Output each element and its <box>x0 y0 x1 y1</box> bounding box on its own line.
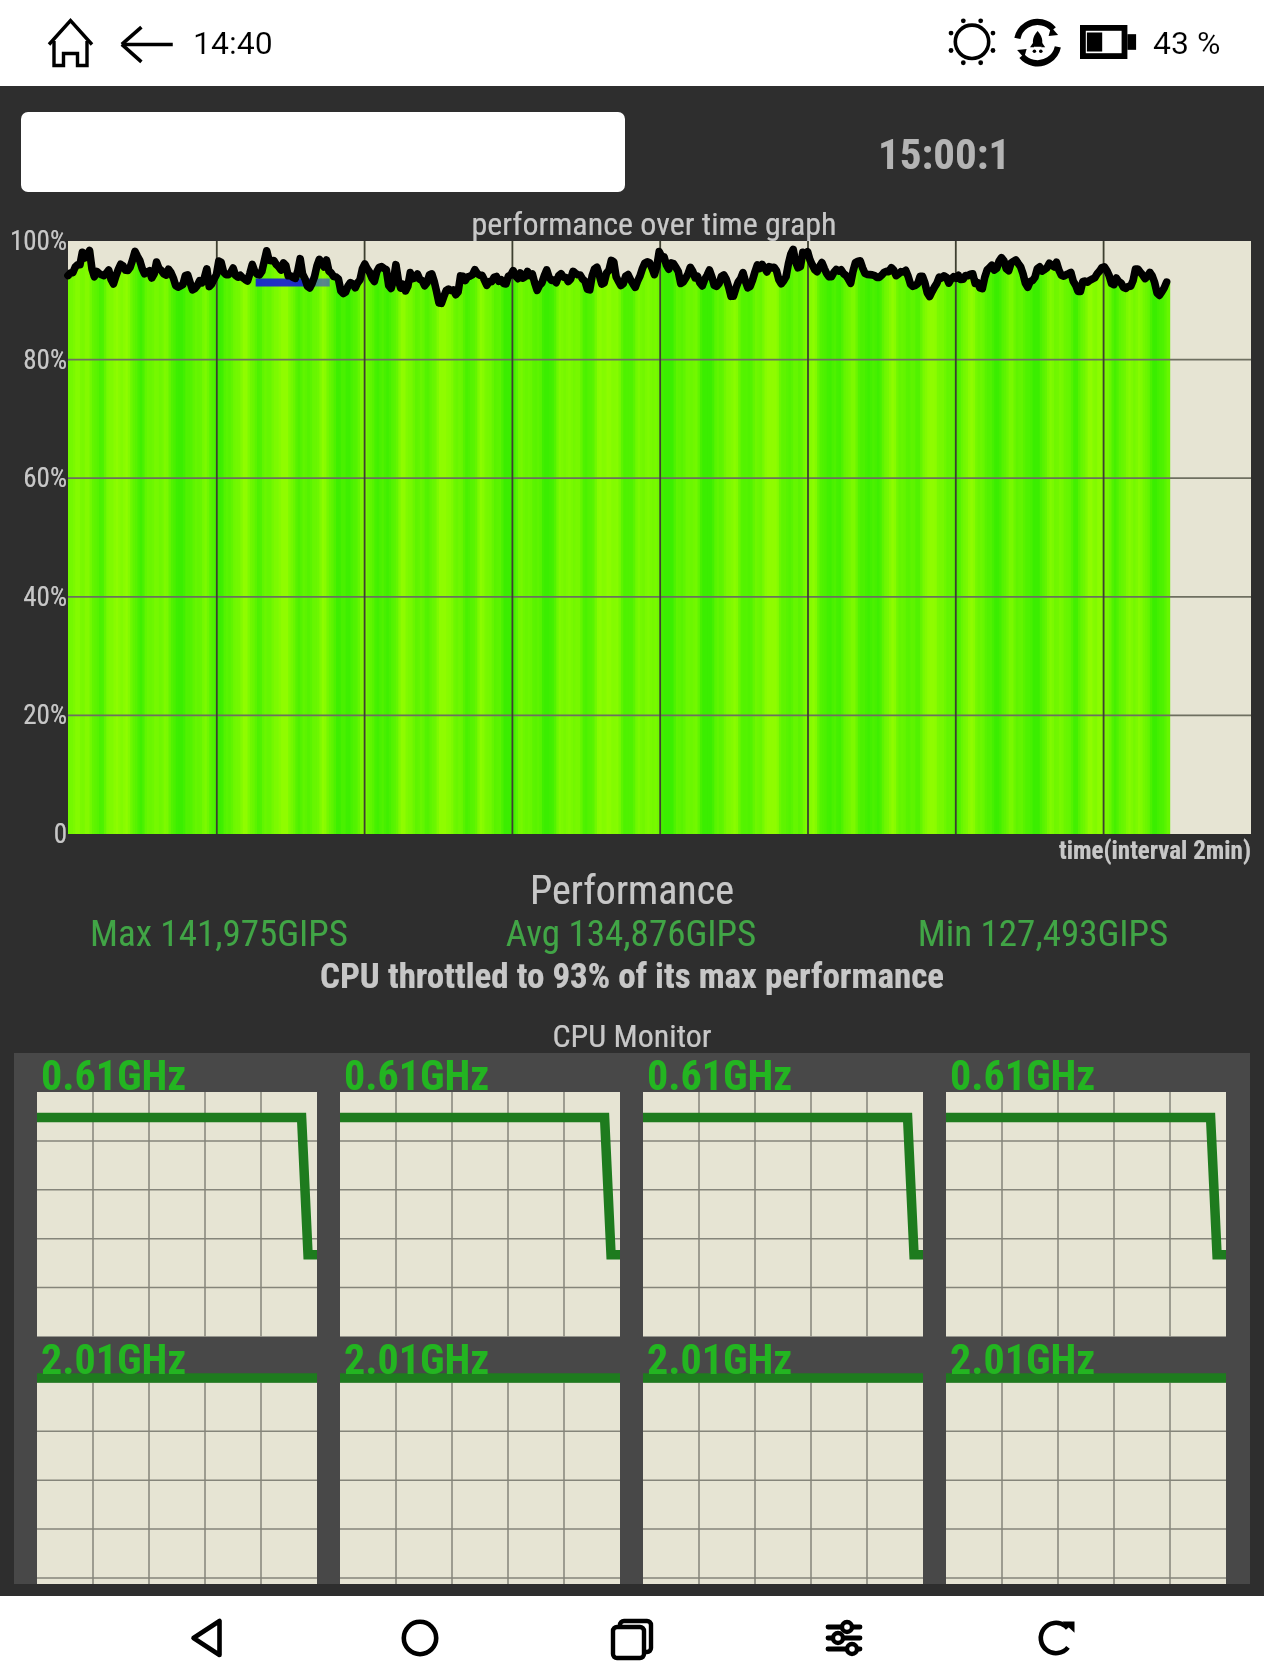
staticText: Min 127,493GIPS <box>837 912 1249 955</box>
staticText: 20% <box>0 699 67 731</box>
button[interactable]: Back <box>102 1596 314 1680</box>
staticText: 0 <box>0 818 67 850</box>
staticText: 2.01GHz <box>647 1335 793 1384</box>
staticText: 0.61GHz <box>41 1053 187 1100</box>
staticText: Avg 134,876GIPS <box>425 912 837 955</box>
staticText: 80% <box>0 344 67 376</box>
staticText: 0.61GHz <box>950 1053 1096 1100</box>
staticText: 100% <box>0 225 67 257</box>
staticText: 2.01GHz <box>950 1335 1096 1384</box>
button[interactable]: Refresh <box>950 1596 1162 1680</box>
staticText: 0.61GHz <box>344 1053 490 1100</box>
staticText: 0.61GHz <box>647 1053 793 1100</box>
staticText: Performance <box>0 867 1264 914</box>
button[interactable]: Brightness <box>944 14 1000 70</box>
staticText: 2.01GHz <box>41 1335 187 1384</box>
staticText: 40% <box>0 581 67 613</box>
button[interactable]: Back <box>119 17 175 73</box>
staticText: 15:00:1 <box>878 129 1011 179</box>
button[interactable]: Home <box>314 1596 526 1680</box>
staticText: performance over time graph <box>22 205 1264 243</box>
button[interactable]: Home <box>44 14 98 68</box>
other: Battery 43 percent <box>1080 25 1140 59</box>
button[interactable]: Start throttling test <box>21 112 625 192</box>
button[interactable]: Recent apps <box>526 1596 738 1680</box>
staticText: 14:40 <box>193 24 273 62</box>
staticText: Max 141,975GIPS <box>13 912 425 955</box>
staticText: 43 % <box>1153 24 1221 62</box>
staticText: time(interval 2min) <box>0 836 1251 865</box>
staticText: CPU throttled to 93% of its max performa… <box>0 956 1264 997</box>
staticText: CPU Monitor <box>0 1017 1264 1055</box>
button[interactable]: Performance mode <box>1010 14 1066 70</box>
staticText: 2.01GHz <box>344 1335 490 1384</box>
staticText: 60% <box>0 462 67 494</box>
button[interactable]: Settings <box>738 1596 950 1680</box>
